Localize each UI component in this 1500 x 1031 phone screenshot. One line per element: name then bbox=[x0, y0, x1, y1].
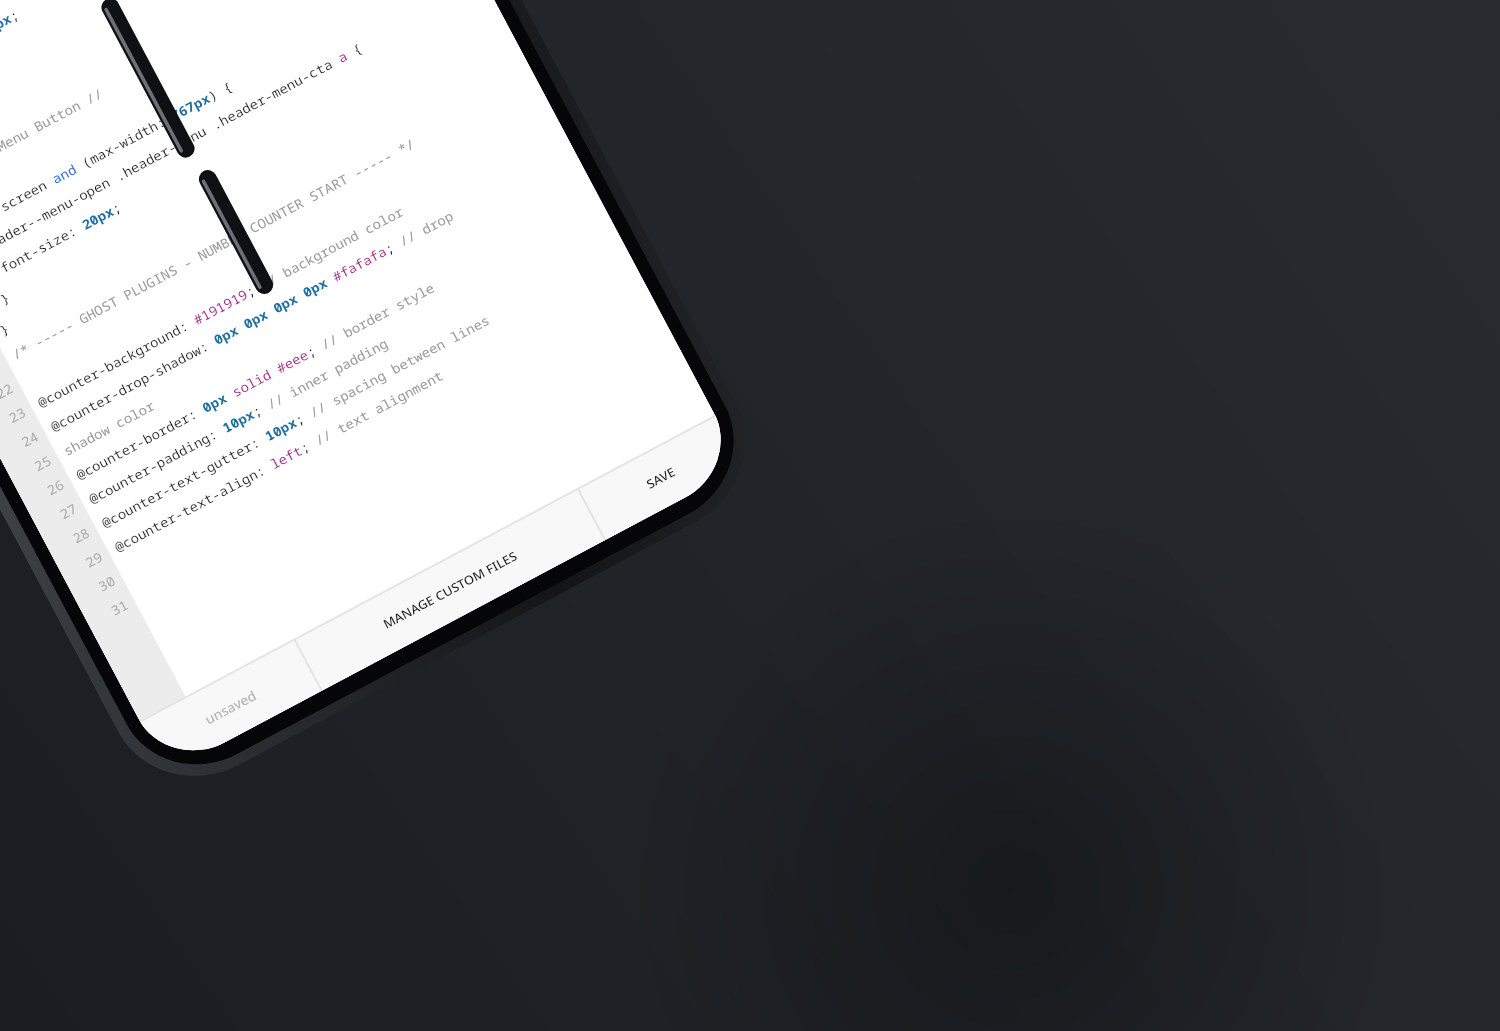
button[interactable]: SAVE bbox=[579, 416, 743, 540]
staticText: 28 bbox=[69, 523, 93, 547]
staticText: @counter-drop-shadow: 0px 0px 0px 0px #f… bbox=[47, 206, 456, 435]
staticText: font-size: 20px; bbox=[0, 198, 125, 277]
staticText: 31 bbox=[108, 596, 131, 619]
other: Volume buttons bbox=[0, 0, 1500, 1031]
staticText: } bbox=[0, 288, 13, 308]
staticText: SAVE bbox=[643, 463, 678, 492]
staticText: .header--menu-open .header-menu .header-… bbox=[0, 39, 365, 260]
staticText: shadow color bbox=[60, 396, 158, 459]
staticText: // Mobile Menu Button // bbox=[0, 84, 106, 195]
button[interactable]: MANAGE CUSTOM FILES bbox=[295, 489, 604, 690]
staticText: @counter-text-align: left; // text align… bbox=[111, 366, 446, 556]
staticText: .header-menu-nav-item a { bbox=[0, 0, 62, 67]
staticText: /* ----- GHOST PLUGINS - NUMBER COUNTER … bbox=[9, 134, 418, 363]
staticText: 22 bbox=[0, 379, 16, 403]
staticText: 29 bbox=[82, 547, 105, 571]
staticText: } bbox=[0, 319, 12, 339]
staticText: unsaved bbox=[202, 686, 259, 728]
staticText: @counter-border: 0px solid #eee; // bord… bbox=[73, 278, 438, 483]
staticText: @media screen and (max-width: 767px) { bbox=[0, 77, 236, 243]
staticText: 30 bbox=[95, 572, 118, 595]
staticText: font-size: 30px; bbox=[0, 5, 22, 84]
staticText: 23 bbox=[5, 403, 29, 427]
staticText: 25 bbox=[31, 451, 54, 475]
staticText: @counter-background: #191919; // backgro… bbox=[34, 202, 407, 411]
staticText: 27 bbox=[56, 499, 80, 523]
staticText: @media screen and (max-width: 767px) { bbox=[0, 0, 133, 50]
staticText: @counter-text-gutter: 10px; // spacing b… bbox=[98, 311, 493, 532]
staticText: 24 bbox=[18, 427, 41, 451]
staticText: @counter-padding: 10px; // inner padding bbox=[86, 334, 391, 508]
staticText: MANAGE CUSTOM FILES bbox=[380, 547, 520, 632]
staticText: 26 bbox=[44, 475, 67, 499]
